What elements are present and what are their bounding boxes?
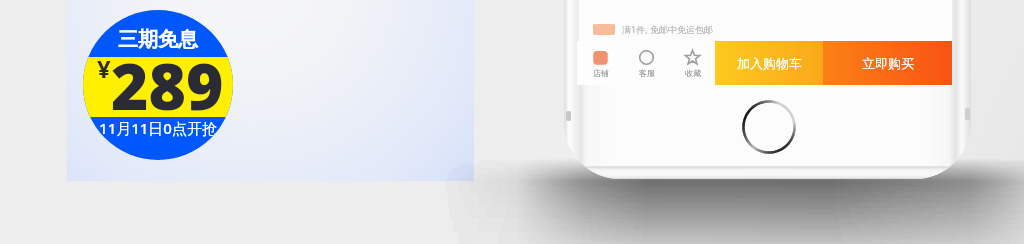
button[interactable]: 收藏 — [669, 41, 715, 85]
button[interactable]: Home — [742, 100, 796, 154]
staticText: 加入购物车 — [737, 55, 802, 71]
button[interactable]: 三期免息 — [83, 10, 233, 160]
button[interactable]: 立即购买 — [823, 41, 952, 85]
staticText: 立即购买 — [862, 55, 914, 71]
staticText: ¥ — [97, 52, 111, 85]
button[interactable]: 店铺 — [577, 41, 623, 85]
staticText: 三期免息 — [118, 27, 198, 52]
button[interactable]: 加入购物车 — [715, 41, 823, 85]
button[interactable]: 客服 — [623, 41, 669, 85]
other: Phone — [564, 0, 971, 179]
staticText: 满1件, 免邮中免运包邮 — [622, 23, 713, 35]
button[interactable] — [67, 0, 474, 181]
staticText: 店铺 — [593, 68, 609, 78]
staticText: 收藏 — [685, 68, 701, 78]
staticText: 289 — [111, 42, 224, 129]
staticText: 11月11日0点开抢 — [99, 118, 217, 138]
staticText: 客服 — [639, 68, 655, 78]
